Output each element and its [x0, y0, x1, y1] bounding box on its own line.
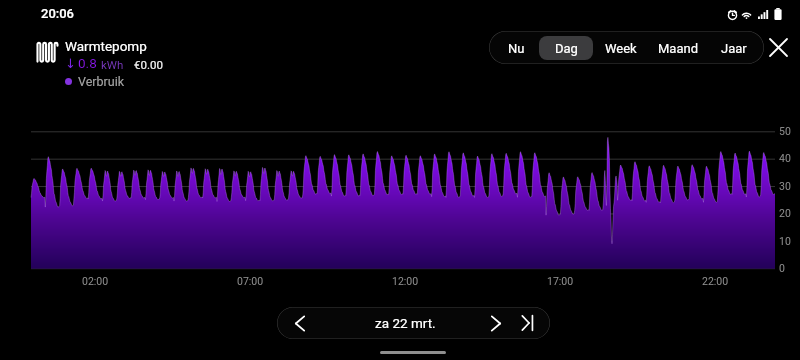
staticText: Week: [605, 41, 637, 56]
staticText: za 22 mrt.: [375, 315, 436, 331]
staticText: Nu: [508, 41, 525, 56]
button[interactable]: Maand: [649, 36, 707, 60]
staticText: 02:00: [82, 275, 109, 287]
staticText: kWh: [101, 58, 124, 71]
staticText: 30: [779, 180, 791, 192]
staticText: 50: [779, 125, 791, 137]
staticText: 12:00: [392, 275, 419, 287]
staticText: 07:00: [237, 275, 264, 287]
staticText: 22:00: [702, 275, 729, 287]
staticText: 17:00: [547, 275, 574, 287]
button[interactable]: Week: [593, 36, 649, 60]
button[interactable]: Next day: [481, 307, 511, 339]
staticText: €0.00: [134, 58, 163, 71]
button[interactable]: Close: [766, 35, 790, 59]
staticText: Warmtepomp: [65, 38, 147, 54]
button[interactable]: Jaar: [707, 36, 760, 60]
staticText: 0.8: [78, 55, 97, 71]
staticText: Maand: [658, 41, 699, 56]
staticText: Dag: [555, 41, 578, 56]
staticText: Jaar: [721, 41, 747, 56]
button[interactable]: Dag: [539, 36, 593, 60]
button[interactable]: Jump to latest: [512, 307, 542, 339]
staticText: 20:06: [41, 6, 75, 21]
button[interactable]: Previous day: [285, 307, 315, 339]
staticText: Verbruik: [78, 74, 125, 89]
staticText: 0: [779, 262, 785, 274]
button[interactable]: Nu: [493, 36, 539, 60]
staticText: 10: [779, 235, 791, 247]
staticText: 20: [779, 207, 791, 219]
staticText: ↓: [65, 56, 76, 71]
staticText: 40: [779, 152, 791, 164]
